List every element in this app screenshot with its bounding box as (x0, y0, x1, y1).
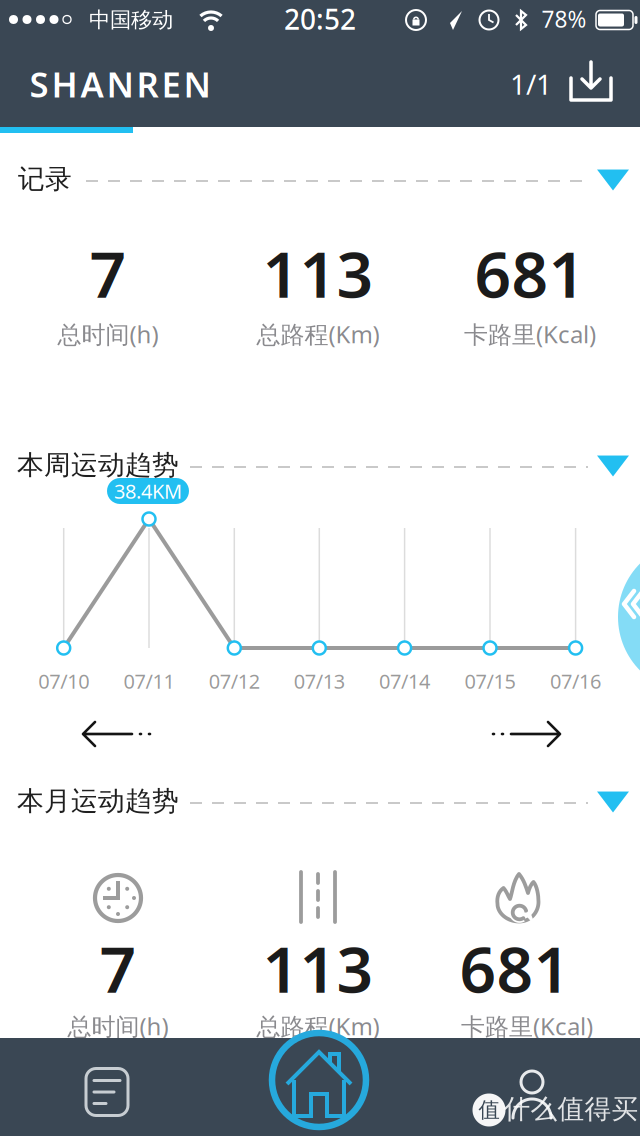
button[interactable]: Open side panel (618, 541, 640, 693)
staticText: 本月运动趋势 (17, 785, 179, 817)
staticText: 681 (459, 925, 570, 1010)
button[interactable]: Previous week (80, 714, 152, 754)
staticText: 38.4KM (114, 478, 182, 504)
button[interactable]: Collapse 本月运动趋势 (597, 791, 629, 812)
staticText: 卡路里(Kcal) (464, 318, 596, 350)
staticText: 中国移动 (89, 7, 173, 33)
staticText: 07/10 (38, 668, 89, 694)
staticText: 113 (262, 925, 373, 1010)
staticText: 681 (474, 230, 585, 315)
staticText: 07/16 (550, 668, 601, 694)
staticText: 7 (89, 230, 126, 315)
staticText: 78% (541, 4, 586, 34)
staticText: 总时间(h) (67, 1010, 168, 1042)
staticText: 本周运动趋势 (17, 449, 179, 481)
staticText: 记录 (18, 163, 72, 195)
staticText: 值 (478, 1097, 499, 1123)
staticText: 20:52 (284, 0, 356, 38)
staticText: 总路程(Km) (256, 1010, 379, 1042)
staticText: 07/11 (123, 668, 174, 694)
button[interactable]: Download (569, 62, 613, 104)
staticText: 1/1 (510, 65, 552, 103)
button[interactable]: Home (267, 1028, 371, 1132)
button[interactable]: Collapse 记录 (597, 169, 629, 190)
staticText: 什么值得买 (503, 1093, 638, 1125)
button[interactable]: Profile (500, 1056, 564, 1120)
staticText: 卡路里(Kcal) (461, 1010, 593, 1042)
staticText: 113 (262, 230, 373, 315)
button[interactable]: Next week (490, 714, 562, 754)
staticText: 总路程(Km) (256, 318, 379, 350)
staticText: 07/12 (209, 668, 260, 694)
staticText: SHANREN (29, 61, 210, 107)
button[interactable]: Records (77, 1062, 137, 1122)
staticText: 07/15 (464, 668, 515, 694)
button[interactable]: Collapse 本周运动趋势 (597, 455, 629, 476)
staticText: 07/13 (294, 668, 345, 694)
staticText: 总时间(h) (57, 318, 158, 350)
staticText: 7 (99, 925, 136, 1010)
staticText: 07/14 (379, 668, 430, 694)
